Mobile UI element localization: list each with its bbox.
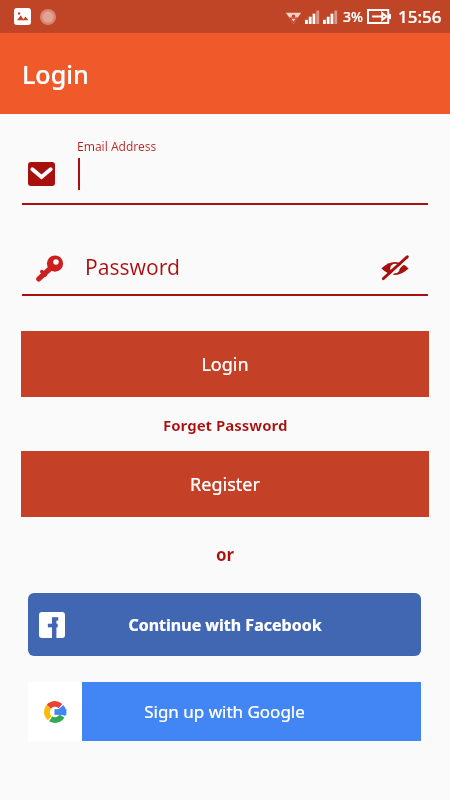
button[interactable]: Forget Password [0, 415, 450, 435]
staticText: Email Address [77, 138, 157, 154]
staticText: 3% [343, 7, 363, 26]
staticText: Sign up with Google [144, 700, 305, 723]
button[interactable]: Register [21, 451, 429, 517]
button[interactable]: Email Address [0, 132, 450, 210]
button[interactable]: Continue with Facebook [28, 593, 421, 656]
button[interactable]: Sign up with Google [28, 682, 421, 741]
button[interactable]: Show password [378, 254, 412, 282]
staticText: Login [22, 57, 89, 91]
button[interactable]: Password [0, 246, 450, 298]
staticText: Password [85, 253, 180, 282]
other: Email [28, 162, 55, 186]
button[interactable]: Login [21, 331, 429, 397]
staticText: Login [201, 352, 249, 377]
staticText: Forget Password [163, 415, 288, 435]
staticText: or [216, 543, 235, 566]
staticText: Register [190, 472, 260, 497]
staticText: Continue with Facebook [128, 614, 322, 636]
staticText: 15:56 [398, 5, 442, 28]
other: Password [34, 255, 64, 281]
